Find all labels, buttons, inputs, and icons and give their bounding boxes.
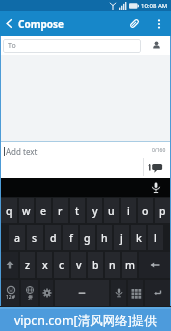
button[interactable]: o [138,198,153,223]
button[interactable]: h [97,225,112,250]
staticText: j [120,231,123,245]
staticText: 0/160 [152,147,166,154]
staticText: w [22,204,31,218]
button[interactable]: To [3,39,141,53]
button[interactable]: x [37,252,52,278]
staticText: m [125,258,135,272]
staticText: s [32,231,38,245]
staticText: l [154,231,157,245]
staticText: 10:08 AM [141,2,168,10]
staticText: d [50,231,57,245]
button[interactable]: t [70,198,85,223]
button[interactable]: u [104,198,119,223]
staticText: h [101,231,108,245]
staticText: r [58,204,63,218]
button[interactable] [145,280,170,306]
staticText: y [92,204,98,218]
staticText: e [40,204,47,218]
staticText: t [75,204,80,218]
button[interactable]: q [1,198,17,223]
button[interactable] [147,11,171,36]
staticText: 拼 [28,294,33,300]
button[interactable] [151,40,162,51]
staticText: To [8,41,16,51]
button[interactable]: j [114,225,129,250]
staticText: v [76,258,82,272]
button[interactable]: c [54,252,69,278]
staticText: c [59,258,65,272]
button[interactable] [55,280,109,306]
button[interactable]: 12# [1,280,19,306]
staticText: Add text [6,146,38,157]
button[interactable]: r [53,198,68,223]
button[interactable]: p [155,198,170,223]
button[interactable] [150,182,162,194]
staticText: Compose [18,17,64,31]
button[interactable]: e [36,198,51,223]
staticText: vipcn.com[清风网络]提供 [14,312,157,329]
staticText: n [109,258,116,272]
button[interactable]: a [9,225,25,250]
button[interactable]: g [80,225,95,250]
button[interactable] [148,163,163,173]
button[interactable]: b [88,252,103,278]
staticText: a [14,231,21,245]
button[interactable]: Add text [0,142,171,178]
button[interactable]: k [131,225,146,250]
staticText: b [92,258,99,272]
button[interactable]: d [45,225,61,250]
button[interactable] [139,252,170,278]
staticText: z [25,258,31,272]
button[interactable]: n [105,252,120,278]
staticText: 12# [6,294,15,301]
staticText: u [108,204,115,218]
button[interactable]: v [71,252,86,278]
button[interactable] [0,11,18,36]
staticText: o [142,204,149,218]
button[interactable] [111,280,126,306]
button[interactable]: z [20,252,35,278]
button[interactable]: y [87,198,102,223]
staticText: p [159,204,166,218]
button[interactable]: m [122,252,137,278]
staticText: k [136,231,142,245]
staticText: f [69,231,73,245]
button[interactable]: w [19,198,34,223]
staticText: g [84,231,91,245]
staticText: q [6,204,13,218]
button[interactable] [128,280,143,306]
button[interactable]: 拼 [21,280,38,306]
button[interactable]: i [121,198,136,223]
button[interactable] [121,11,147,36]
button[interactable]: f [63,225,78,250]
staticText: i [127,204,130,218]
button[interactable]: s [27,225,43,250]
button[interactable] [40,280,53,306]
staticText: x [42,258,48,272]
button[interactable]: l [148,225,163,250]
button[interactable] [1,252,18,278]
